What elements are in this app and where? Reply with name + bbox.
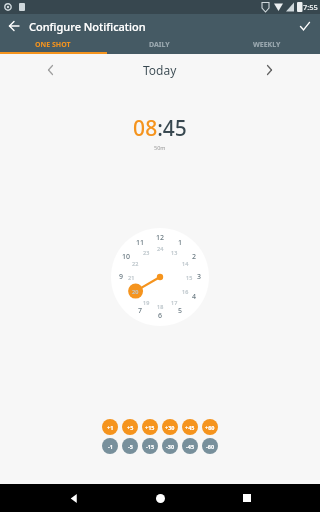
staticText: 9 [119,272,124,282]
button[interactable]: DAILY [106,38,213,52]
staticText: -5 [128,443,133,450]
button[interactable]: +15 [142,419,158,435]
staticText: +60 [205,424,215,431]
staticText: 7:55 [303,2,318,12]
staticText: -1 [108,443,113,450]
button[interactable]: Confirm [295,16,315,36]
button[interactable]: -5 [122,438,138,454]
staticText: 1 [178,238,183,248]
staticText: 17 [171,299,178,306]
staticText: 4 [192,292,197,302]
staticText: 11 [136,238,145,248]
staticText: 6 [158,311,163,321]
button[interactable]: Previous day [40,59,62,81]
staticText: 12 [156,233,165,243]
staticText: -15 [146,443,155,450]
staticText: 19 [143,299,150,306]
staticText: +30 [165,424,175,431]
staticText: ONE SHOT [35,40,71,50]
button[interactable]: +45 [182,419,198,435]
staticText: +1 [107,424,114,431]
staticText: -45 [186,443,195,450]
staticText: Today [143,62,177,78]
button[interactable]: +1 [102,419,118,435]
staticText: -30 [166,443,175,450]
staticText: 20 [132,288,139,295]
button[interactable]: -45 [182,438,198,454]
button[interactable]: WEEKLY [213,38,320,52]
button[interactable]: +60 [202,419,218,435]
button[interactable]: Next day [258,59,280,81]
staticText: 50m [154,144,166,151]
button[interactable]: 1 [111,228,209,326]
staticText: 13 [171,249,178,256]
button[interactable]: Back [61,485,87,511]
staticText: 08:45 [133,114,187,143]
staticText: 15 [186,274,193,281]
button[interactable]: -15 [142,438,158,454]
button[interactable]: -1 [102,438,118,454]
staticText: Configure Notification [29,19,146,34]
staticText: DAILY [149,40,170,50]
staticText: 16 [182,288,189,295]
staticText: 10 [122,252,131,262]
button[interactable]: -30 [162,438,178,454]
button[interactable]: Home [147,485,173,511]
staticText: 18 [157,303,164,310]
button[interactable]: -60 [202,438,218,454]
staticText: 2 [192,252,197,262]
staticText: +45 [185,424,195,431]
staticText: 8 [124,292,129,302]
staticText: 7 [138,306,143,316]
staticText: 23 [143,249,150,256]
button[interactable]: Back [4,16,24,36]
button[interactable]: +30 [162,419,178,435]
staticText: 14 [182,260,189,267]
staticText: 22 [132,260,139,267]
staticText: 21 [128,274,135,281]
staticText: +15 [145,424,155,431]
button[interactable]: Recents [234,485,260,511]
staticText: WEEKLY [253,40,281,50]
button[interactable]: ONE SHOT [0,38,106,52]
staticText: 5 [178,306,183,316]
button[interactable]: +5 [122,419,138,435]
staticText: 24 [157,245,164,252]
staticText: -60 [206,443,215,450]
staticText: 3 [197,272,202,282]
staticText: +5 [127,424,134,431]
